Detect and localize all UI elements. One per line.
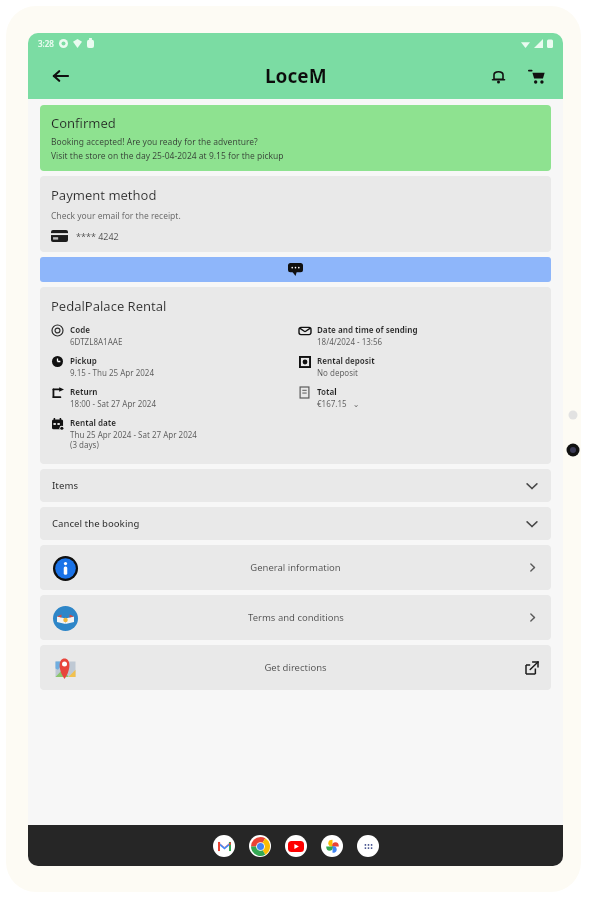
button[interactable]: Payment method <box>40 176 551 252</box>
staticText: Payment method <box>51 186 157 204</box>
staticText: Total <box>317 386 337 397</box>
button[interactable]: Chrome <box>249 835 271 857</box>
staticText: 18:00 - Sat 27 Apr 2024 <box>70 398 156 409</box>
staticText: 3:28 <box>38 38 54 49</box>
staticText: Thu 25 Apr 2024 - Sat 27 Apr 2024 (3 day… <box>70 429 197 450</box>
staticText: Check your email for the receipt. <box>51 210 181 222</box>
staticText: PedalPalace Rental <box>51 297 167 315</box>
staticText: Items <box>52 479 79 492</box>
button[interactable]: Photos <box>321 835 343 857</box>
staticText: Code <box>70 324 90 335</box>
button[interactable]: Items <box>40 469 551 502</box>
staticText: €167.15 ⌄ <box>317 398 360 409</box>
staticText: 9.15 - Thu 25 Apr 2024 <box>70 367 154 378</box>
button[interactable]: Back <box>46 62 74 90</box>
button[interactable]: Chat <box>40 257 551 282</box>
button[interactable]: Notifications <box>485 63 511 89</box>
button[interactable]: Get directions <box>40 645 551 690</box>
staticText: Get directions <box>264 661 327 674</box>
staticText: No deposit <box>317 367 358 378</box>
button[interactable]: Cancel the booking <box>40 507 551 540</box>
staticText: Booking accepted! Are you ready for the … <box>51 136 258 148</box>
button[interactable]: PedalPalace Rental <box>40 287 551 464</box>
staticText: **** 4242 <box>76 230 119 242</box>
staticText: 18/4/2024 - 13:56 <box>317 336 383 347</box>
button[interactable]: Confirmed <box>40 105 551 171</box>
button[interactable]: General information <box>40 545 551 590</box>
staticText: Cancel the booking <box>52 517 140 530</box>
staticText: Rental date <box>70 417 117 428</box>
staticText: Pickup <box>70 355 97 366</box>
staticText: LoceM <box>265 63 327 89</box>
staticText: General information <box>250 561 341 574</box>
button[interactable]: Gmail <box>213 835 235 857</box>
staticText: Date and time of sending <box>317 324 418 335</box>
staticText: Confirmed <box>51 114 116 132</box>
staticText: Terms and conditions <box>248 611 344 624</box>
staticText: Visit the store on the day 25-04-2024 at… <box>51 150 284 162</box>
button[interactable]: Terms and conditions <box>40 595 551 640</box>
staticText: Return <box>70 386 98 397</box>
button[interactable]: All apps <box>357 835 379 857</box>
staticText: Rental deposit <box>317 355 375 366</box>
staticText: 6DTZL8A1AAE <box>70 336 123 347</box>
button[interactable]: YouTube <box>285 835 307 857</box>
button[interactable]: Cart <box>523 63 549 89</box>
